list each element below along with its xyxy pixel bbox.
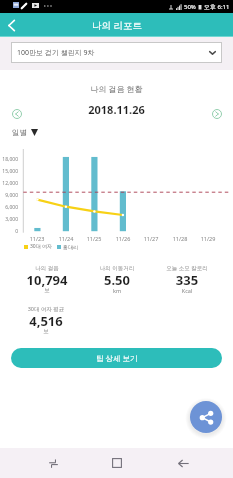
staticText: 나의 걸음	[2, 264, 92, 272]
staticText: 11/28	[170, 235, 190, 242]
button[interactable]: Previous	[9, 106, 25, 122]
button[interactable]: 일별	[10, 126, 40, 139]
staticText: 나의 이동거리	[72, 264, 162, 272]
staticText: 팀 상세 보기	[96, 353, 138, 363]
staticText: 10,794	[2, 271, 92, 289]
staticText: 18,000	[0, 156, 18, 163]
button[interactable]: Share	[190, 401, 222, 433]
staticText: 오후 6:11	[204, 3, 230, 11]
staticText: 나의 걸음 현황	[0, 83, 233, 94]
staticText: 보	[2, 287, 92, 294]
staticText: 오늘 소모 칼로리	[142, 264, 232, 272]
staticText: 50%	[184, 3, 196, 11]
staticText: 9,000	[0, 192, 18, 199]
button[interactable]: 100만보 걷기 챌린지 9차	[11, 42, 222, 63]
staticText: 2018.11.26	[0, 102, 233, 117]
staticText: 0	[0, 228, 18, 235]
staticText: 홍대리	[63, 244, 78, 250]
button[interactable]: 팀 상세 보기	[11, 348, 222, 368]
staticText: 335	[142, 271, 232, 289]
staticText: 30대 여자	[30, 243, 53, 250]
staticText: 4,516	[1, 312, 91, 330]
staticText: km	[72, 287, 162, 294]
staticText: 11/25	[84, 235, 104, 242]
staticText: Kcal	[142, 287, 232, 294]
staticText: 11/23	[27, 235, 47, 242]
staticText: 일별	[12, 128, 27, 137]
staticText: 30대 여자 평균	[1, 305, 91, 313]
staticText: 11/29	[198, 235, 218, 242]
button[interactable]: Next	[209, 106, 225, 122]
staticText: 11/26	[113, 235, 133, 242]
staticText: 11/27	[141, 235, 161, 242]
button[interactable]: Back	[1, 15, 21, 35]
staticText: 11/24	[56, 235, 76, 242]
staticText: 3,000	[0, 216, 18, 223]
staticText: 5.50	[72, 271, 162, 289]
button[interactable]: Recents	[40, 448, 66, 478]
staticText: 12,000	[0, 180, 18, 187]
button[interactable]: Back	[170, 448, 196, 478]
staticText: 15,000	[0, 168, 18, 175]
staticText: 나의 리포트	[92, 19, 142, 32]
staticText: 6,000	[0, 204, 18, 211]
staticText: 100만보 걷기 챌린지 9차	[17, 48, 95, 58]
staticText: 보	[1, 328, 91, 335]
button[interactable]: Home	[104, 448, 130, 478]
